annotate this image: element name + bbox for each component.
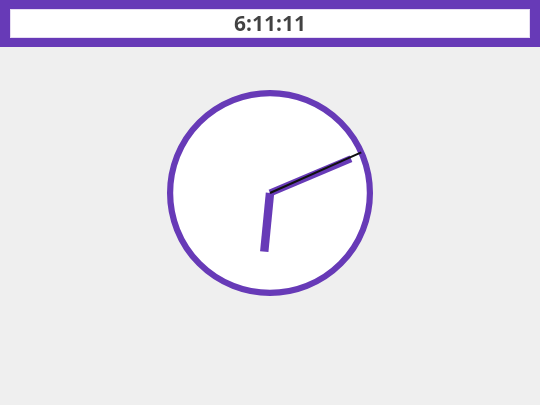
button[interactable]: Analog clock showing 6:11:11 xyxy=(167,90,373,296)
button[interactable]: 6:11:11 xyxy=(10,9,530,38)
staticText: 6:11:11 xyxy=(234,9,306,38)
